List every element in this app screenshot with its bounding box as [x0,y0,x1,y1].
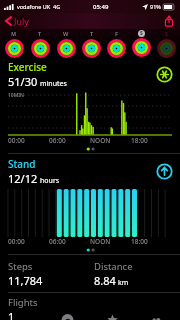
staticText: Exercise [8,60,47,74]
button[interactable]: Back to July [5,15,29,27]
staticText: NOON [90,136,111,145]
staticText: 05:49 [93,3,109,11]
staticText: 00:00 [8,237,25,246]
button[interactable]: Exercise goal [156,66,173,83]
staticText: S [165,30,169,37]
staticText: July [14,15,29,27]
staticText: 18:00 [131,136,148,145]
staticText: 11,784 [8,273,43,288]
staticText: 18:00 [131,237,148,246]
button[interactable]: Day F [104,30,129,58]
staticText: M [11,30,17,37]
staticText: 4G [53,3,61,10]
staticText: 00:00 [8,136,25,145]
staticText: 06:00 [49,136,66,145]
staticText: 06:00 [49,237,66,246]
button[interactable]: Steps [8,260,94,288]
staticText: NOON [90,237,111,246]
staticText: Distance [94,260,133,273]
staticText: km [118,278,129,288]
button[interactable]: Day M [1,30,27,58]
staticText: vodafone UK [17,3,51,10]
staticText: Steps [8,260,33,273]
staticText: 12/12 [8,171,38,186]
staticText: 8.84 [94,273,116,288]
staticText: Stand [8,157,36,171]
staticText: Flights [8,296,38,309]
button[interactable]: Day S [154,30,179,58]
button[interactable]: Day W [53,30,79,58]
staticText: T [38,30,42,37]
staticText: 1 [8,309,15,320]
staticText: 51/30 [8,74,38,89]
staticText: hours [40,176,60,186]
button[interactable]: Day S [129,30,154,57]
button[interactable]: Share [163,15,175,27]
staticText: S [140,30,143,37]
button[interactable]: Distance [94,260,180,288]
staticText: T [90,30,94,37]
staticText: 91% [150,3,161,10]
button[interactable]: Exercise section [8,60,173,89]
staticText: 10MIN [8,92,24,99]
staticText: F [115,30,119,37]
button[interactable]: Stand section [8,157,173,186]
button[interactable]: Flights [8,296,180,320]
button[interactable]: Stand goal [156,163,173,180]
staticText: W [63,30,69,37]
staticText: minutes [40,79,67,89]
button[interactable]: Day T [27,30,53,58]
button[interactable]: Day T [79,30,104,58]
